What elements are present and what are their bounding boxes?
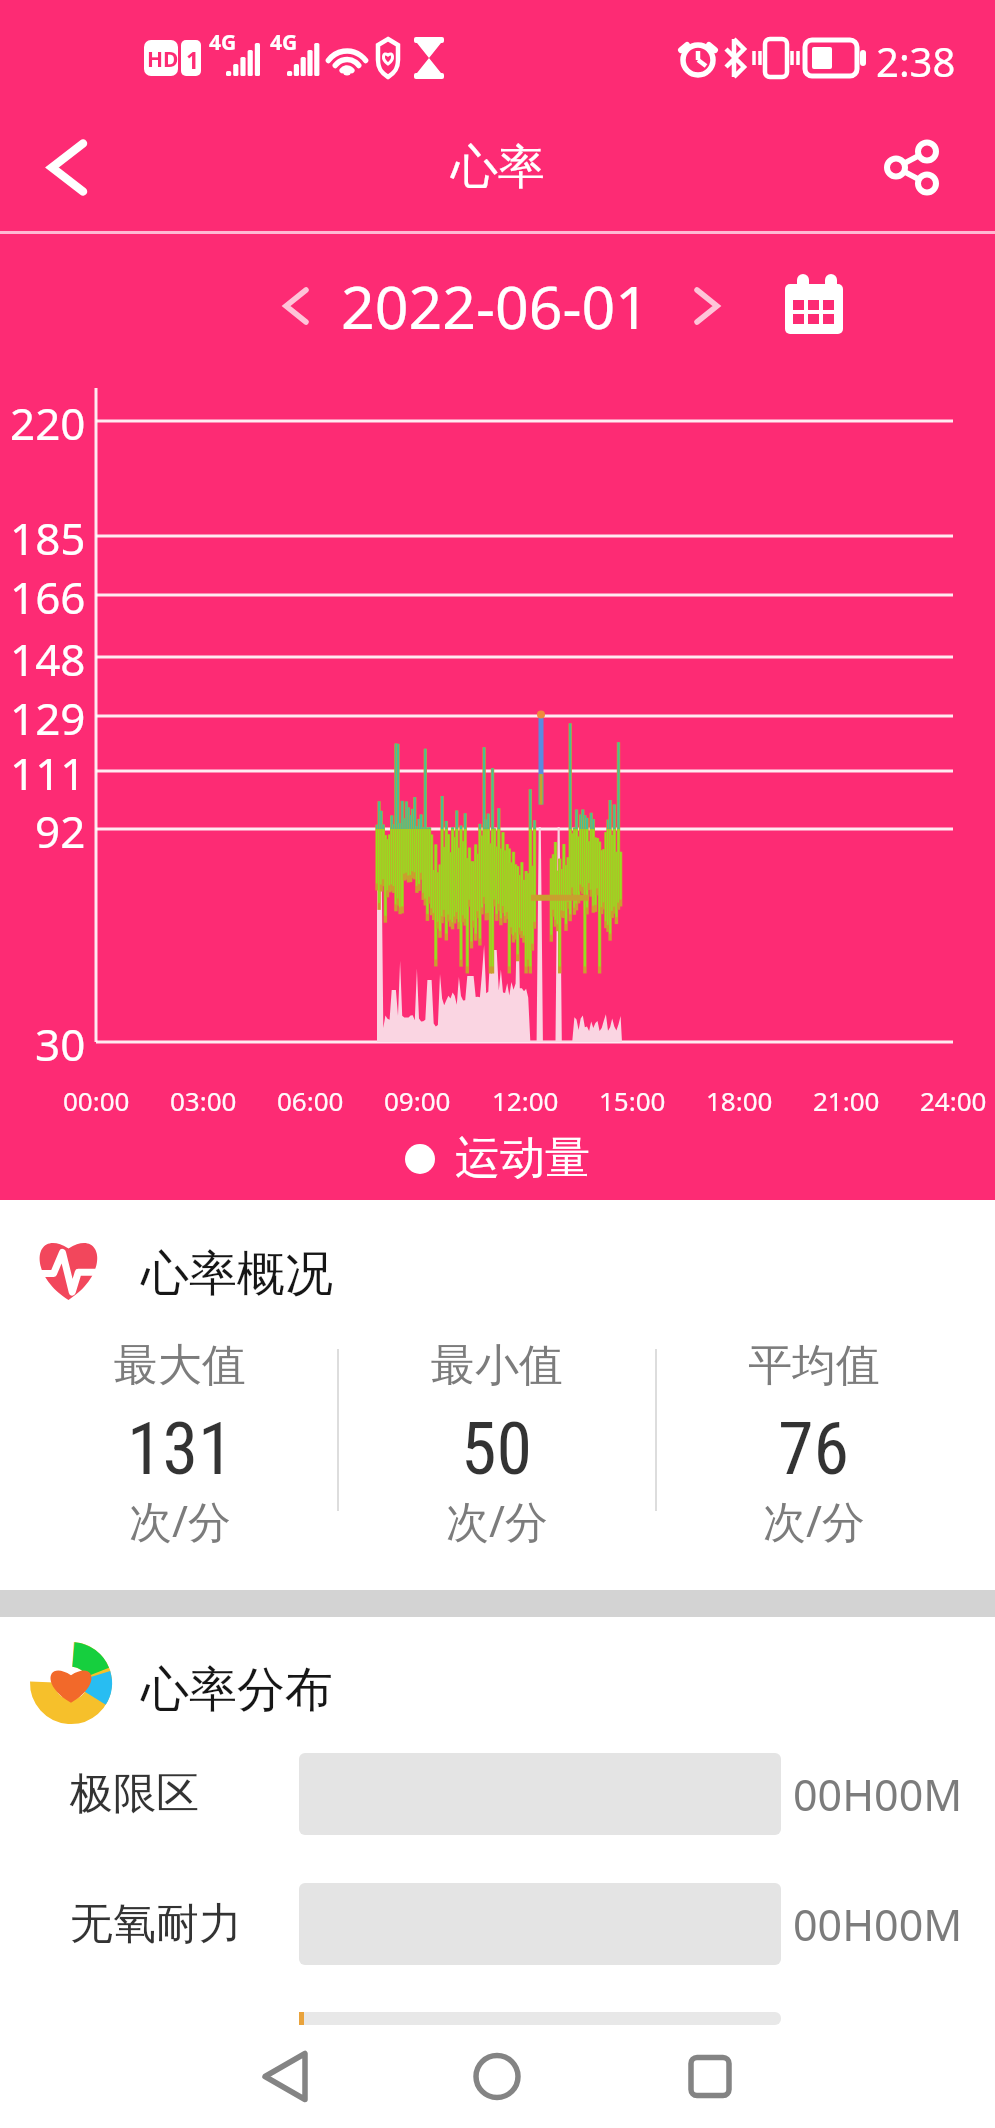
staticText: 最大值 [114, 1338, 246, 1393]
staticText: 18:00 [706, 1083, 773, 1118]
staticText: 06:00 [277, 1083, 344, 1118]
button[interactable]: Home [412, 2025, 582, 2128]
staticText: 00H00M [793, 1765, 963, 1824]
staticText: 无氧耐力 [70, 1897, 242, 1951]
staticText: 30 [35, 1014, 86, 1074]
staticText: 92 [35, 801, 86, 861]
button[interactable]: Back [0, 105, 118, 230]
staticText: 03:00 [170, 1083, 237, 1118]
button[interactable]: 无氧耐力 [0, 1883, 995, 1965]
button[interactable]: Next day [676, 232, 738, 380]
staticText: 心率 [451, 138, 545, 197]
button[interactable]: Back [200, 2025, 370, 2128]
staticText: 最小值 [431, 1338, 563, 1393]
staticText: 15:00 [599, 1083, 666, 1118]
staticText: 09:00 [384, 1083, 451, 1118]
staticText: 心率概况 [141, 1244, 333, 1304]
staticText: 次/分 [763, 1491, 865, 1550]
staticText: 166 [10, 567, 86, 627]
staticText: 00H00M [793, 1895, 963, 1954]
staticText: 平均值 [748, 1338, 880, 1393]
staticText: 1 [186, 44, 200, 75]
staticText: 12:00 [492, 1083, 559, 1118]
staticText: 131 [127, 1407, 234, 1491]
staticText: 185 [10, 508, 86, 568]
button[interactable]: Recents [625, 2025, 795, 2128]
staticText: 76 [778, 1407, 850, 1491]
staticText: 次/分 [129, 1491, 231, 1550]
staticText: 4G [270, 28, 298, 57]
staticText: 220 [10, 393, 86, 453]
staticText: 00:00 [63, 1083, 130, 1118]
button[interactable]: 极限区 [0, 1753, 995, 1835]
button[interactable]: Previous day [265, 232, 327, 380]
staticText: 24:00 [920, 1083, 987, 1118]
staticText: 21:00 [813, 1083, 880, 1118]
button[interactable]: Share [865, 105, 995, 230]
staticText: 极限区 [70, 1767, 199, 1821]
staticText: 129 [10, 688, 86, 748]
staticText: HD [147, 45, 179, 74]
staticText: 2:38 [876, 34, 956, 88]
staticText: 50 [461, 1407, 533, 1491]
staticText: 运动量 [455, 1130, 590, 1187]
staticText: 4G [209, 28, 237, 57]
button[interactable]: Pick date [769, 232, 859, 380]
staticText: 次/分 [446, 1491, 548, 1550]
staticText: 111 [10, 743, 86, 803]
staticText: 心率分布 [141, 1660, 333, 1720]
staticText: 2022-06-01 [341, 266, 649, 346]
staticText: 148 [10, 629, 86, 689]
button[interactable]: 2022-06-01 [337, 232, 652, 380]
